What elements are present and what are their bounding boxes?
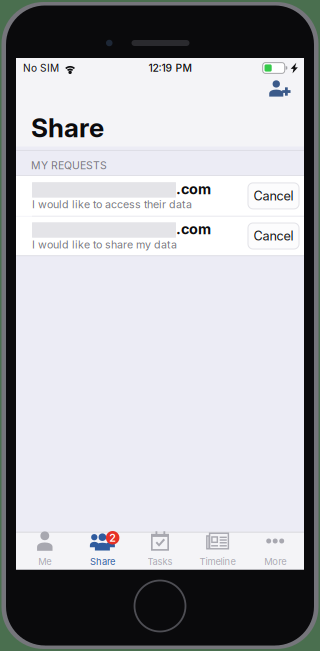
staticText: I would like to access their data — [32, 198, 192, 211]
button[interactable]: Add person — [258, 74, 304, 103]
staticText: Cancel — [253, 188, 293, 203]
staticText: 12:19 PM — [148, 62, 191, 74]
staticText: Share — [31, 112, 104, 143]
staticText: More — [264, 556, 286, 567]
staticText: Me — [38, 556, 51, 567]
button[interactable]: Cancel — [248, 223, 299, 249]
button[interactable]: Timeline — [189, 532, 246, 570]
staticText: Cancel — [253, 228, 293, 244]
button[interactable]: Cancel — [248, 183, 299, 209]
staticText: Share — [90, 556, 115, 567]
button[interactable]: 2 — [74, 532, 131, 570]
staticText: Tasks — [147, 556, 172, 567]
staticText: MY REQUESTS — [31, 159, 107, 172]
staticText: No SIM — [23, 62, 59, 74]
staticText: I would like to share my data — [32, 238, 177, 251]
staticText: .com — [176, 220, 211, 238]
button[interactable]: Me — [16, 532, 74, 570]
staticText: Timeline — [200, 556, 236, 567]
button[interactable]: More — [246, 532, 304, 570]
staticText: .com — [176, 180, 211, 198]
staticText: 2 — [109, 531, 116, 544]
button[interactable]: Tasks — [131, 532, 189, 570]
